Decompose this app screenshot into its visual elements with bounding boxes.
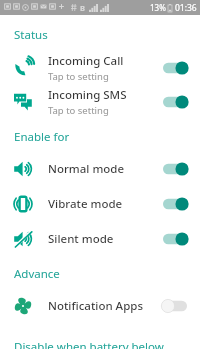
staticText: Silent mode [48, 231, 114, 247]
button[interactable]: Toggle on [160, 58, 190, 78]
staticText: Advance [14, 266, 60, 282]
staticText: Normal mode [48, 161, 125, 177]
button[interactable]: Incoming Call [0, 51, 200, 85]
button[interactable]: Silent mode [0, 221, 200, 256]
button[interactable]: Toggle on [160, 194, 190, 214]
staticText: Vibrate mode [48, 196, 123, 212]
staticText: Incoming Call [48, 53, 124, 69]
staticText: Tap to setting [48, 70, 109, 83]
staticText: Disable when battery below [14, 339, 164, 349]
button[interactable]: Toggle off [160, 296, 190, 316]
button[interactable]: Disable when battery below [0, 333, 200, 355]
button[interactable]: Toggle on [160, 159, 190, 179]
button[interactable]: Toggle on [160, 92, 190, 112]
staticText: Incoming SMS [48, 87, 127, 103]
button[interactable]: Notification Apps [0, 288, 200, 323]
staticText: Notification Apps [48, 298, 144, 314]
staticText: 01:36 [175, 2, 197, 14]
staticText: Enable for [14, 129, 70, 145]
button[interactable]: Vibrate mode [0, 186, 200, 221]
staticText: Status [14, 27, 48, 43]
button[interactable]: Toggle on [160, 229, 190, 249]
button[interactable]: Incoming SMS [0, 85, 200, 119]
staticText: Tap to setting [48, 104, 109, 117]
staticText: B [80, 3, 85, 13]
button[interactable]: Normal mode [0, 151, 200, 186]
staticText: 13% [150, 2, 166, 13]
